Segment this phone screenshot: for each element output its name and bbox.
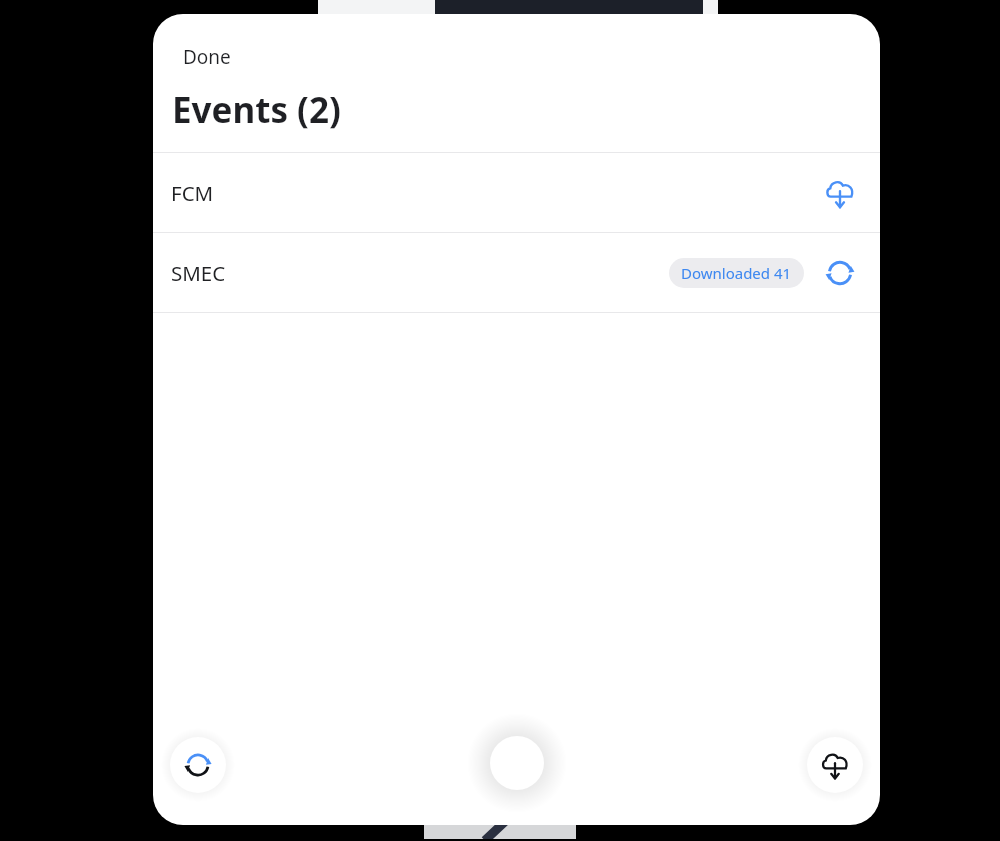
button[interactable]: Sync SMEC	[820, 253, 860, 293]
staticText: SMEC	[171, 259, 226, 287]
button[interactable]: Home	[490, 736, 544, 790]
button[interactable]: Download FCM	[820, 173, 860, 213]
button[interactable]: Done	[161, 30, 253, 84]
staticText: Events (2)	[172, 86, 341, 134]
staticText: Done	[183, 44, 231, 70]
staticText: FCM	[171, 179, 214, 207]
button[interactable]: Download all	[807, 737, 863, 793]
button[interactable]: SMEC	[153, 233, 880, 312]
button[interactable]: FCM	[153, 153, 880, 232]
button[interactable]: Sync all	[170, 737, 226, 793]
button[interactable]: Downloaded 41	[669, 258, 804, 288]
staticText: Downloaded 41	[681, 263, 792, 283]
